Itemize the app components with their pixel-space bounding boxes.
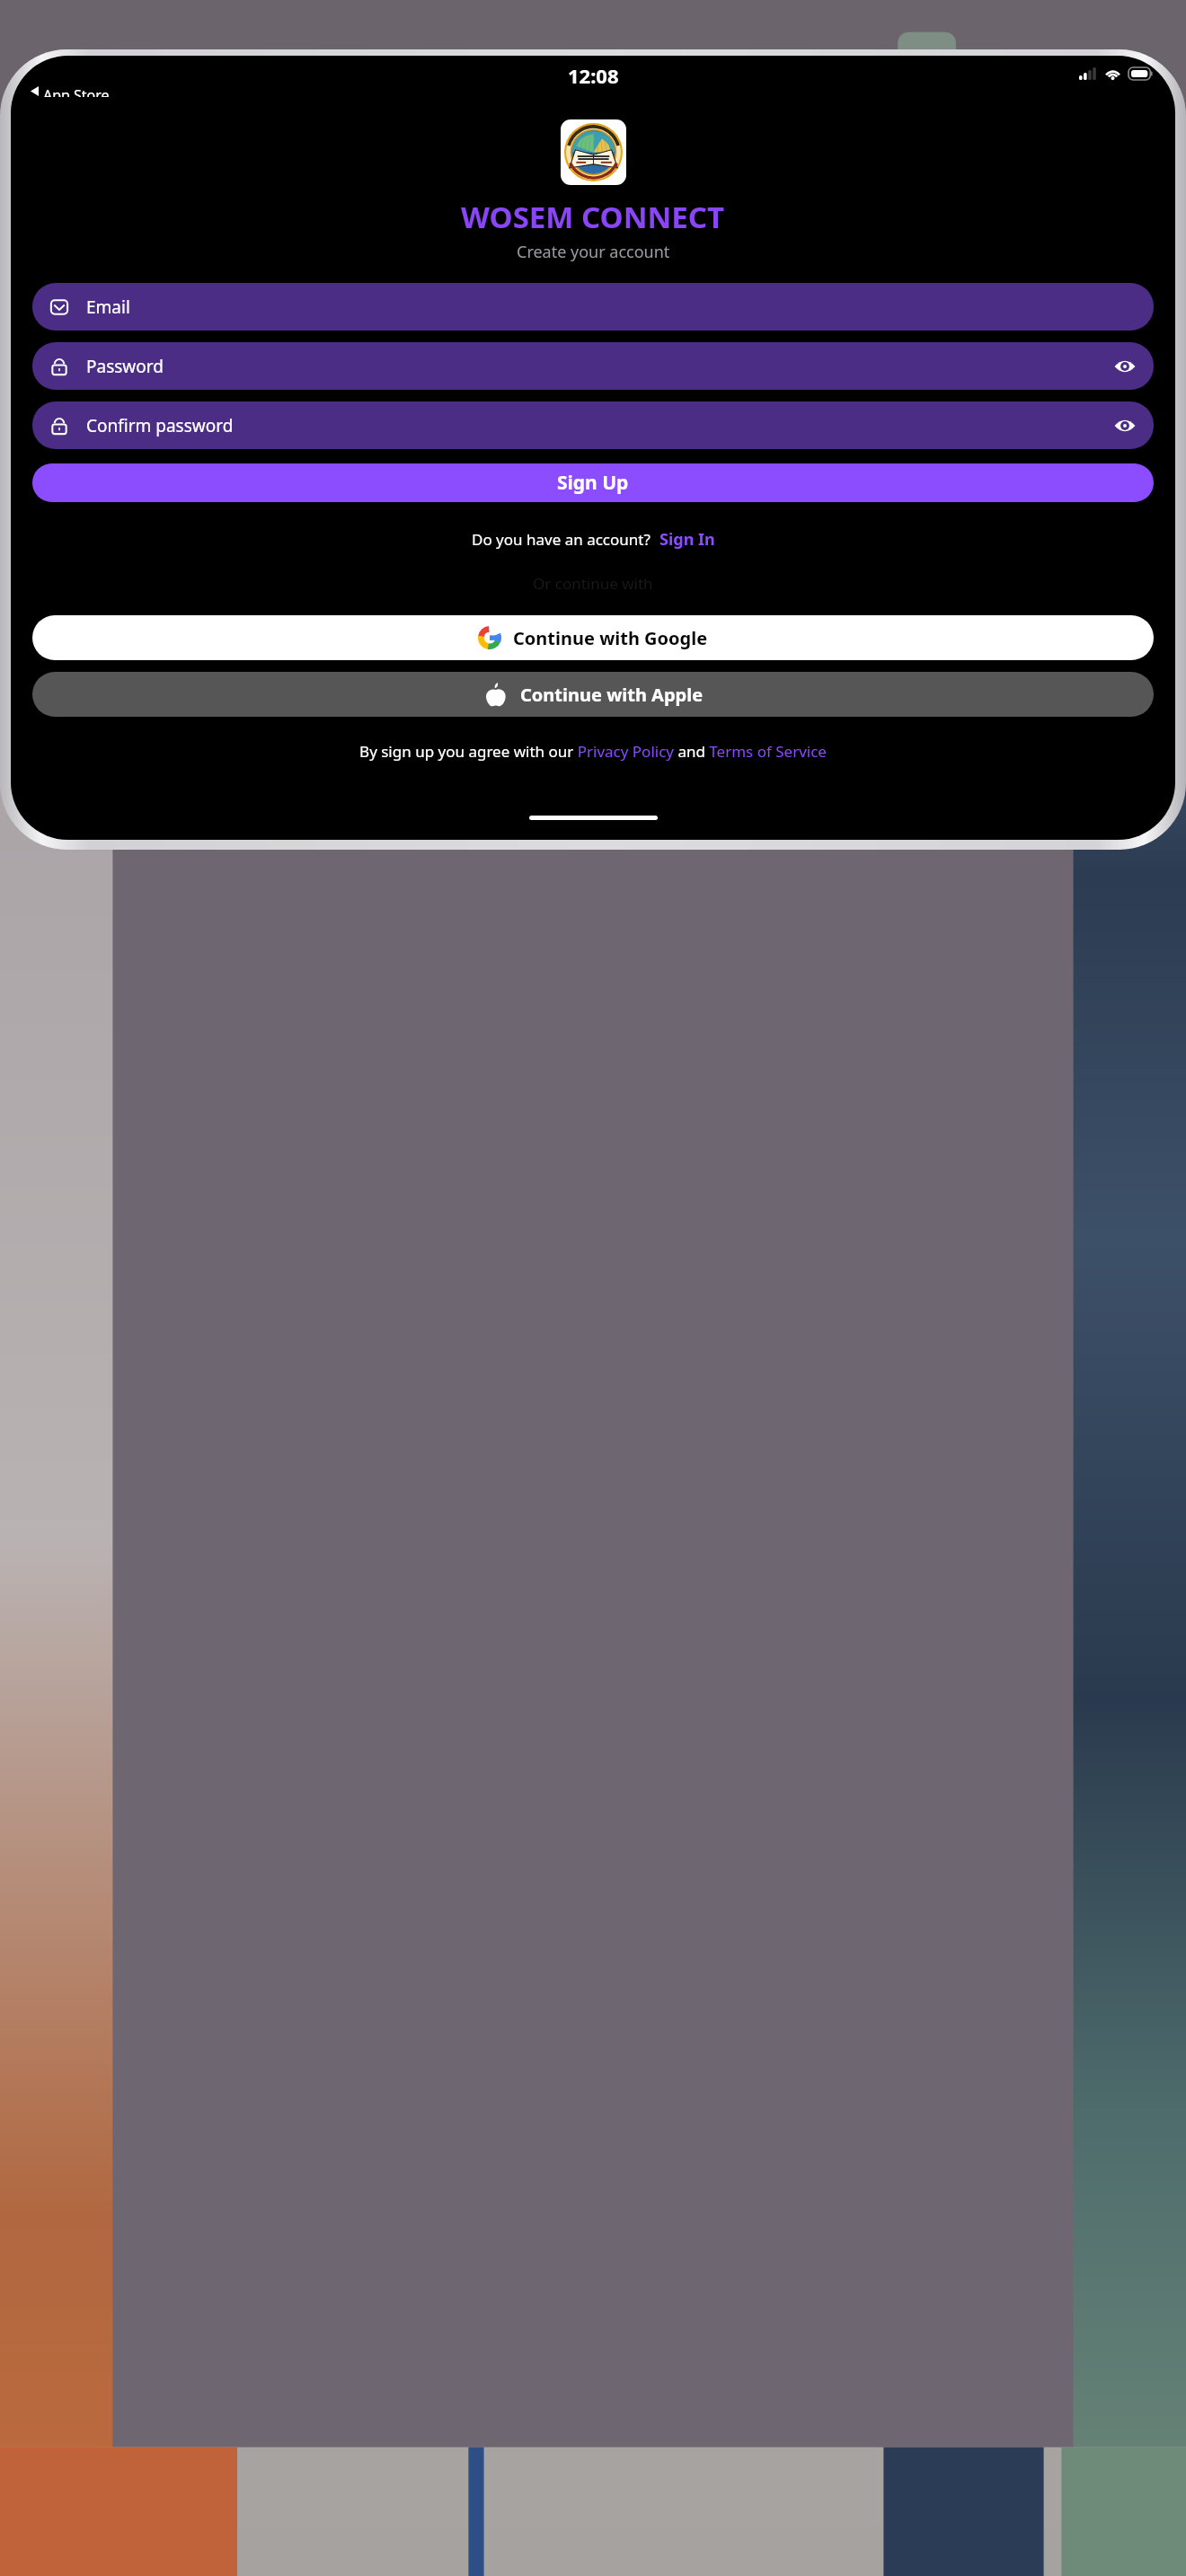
staticText: Continue with Google — [513, 626, 708, 650]
staticText: Or continue with — [533, 573, 653, 594]
staticText: Sign In — [659, 528, 715, 551]
staticText: Create your account — [517, 241, 670, 263]
button[interactable]: Sign In — [659, 528, 715, 551]
button[interactable]: Password — [32, 342, 1154, 390]
staticText: By sign up you agree with our Privacy Po… — [359, 741, 827, 762]
staticText: WOSEM CONNECT — [461, 197, 725, 237]
staticText: Confirm password — [86, 414, 234, 437]
staticText: Sign Up — [557, 470, 629, 496]
button[interactable]: Continue with Apple — [32, 672, 1154, 717]
button[interactable]: Confirm password — [32, 401, 1154, 449]
button[interactable]: Email — [32, 283, 1154, 331]
staticText: Email — [86, 296, 130, 319]
button[interactable]: Sign Up — [32, 463, 1154, 502]
button[interactable]: Show password — [1112, 354, 1137, 379]
staticText: Do you have an account? — [472, 529, 651, 550]
button[interactable]: Show password — [1112, 413, 1137, 438]
staticText: Continue with Apple — [520, 683, 704, 707]
staticText: App Store — [43, 85, 110, 97]
staticText: 12:08 — [568, 62, 619, 89]
button[interactable]: Continue with Google — [32, 615, 1154, 660]
staticText: Password — [86, 355, 164, 378]
